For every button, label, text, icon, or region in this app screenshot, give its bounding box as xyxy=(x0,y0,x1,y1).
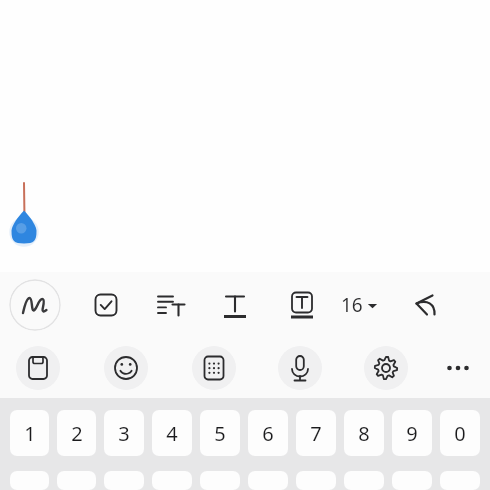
staticText: 4 xyxy=(166,420,178,447)
button[interactable]: 5 xyxy=(200,410,240,456)
button[interactable] xyxy=(200,471,240,490)
button[interactable]: Paragraph style xyxy=(148,282,194,328)
staticText: 16 xyxy=(341,292,363,318)
button[interactable]: 8 xyxy=(344,410,384,456)
button[interactable] xyxy=(104,471,144,490)
button[interactable]: Settings xyxy=(364,346,408,390)
button[interactable]: Emoji xyxy=(104,346,148,390)
button[interactable]: 6 xyxy=(248,410,288,456)
staticText: 8 xyxy=(358,420,370,447)
button[interactable]: Text format xyxy=(212,282,258,328)
button[interactable] xyxy=(248,471,288,490)
button[interactable]: Undo xyxy=(402,282,448,328)
staticText: 3 xyxy=(118,420,130,447)
staticText: 2 xyxy=(71,420,83,447)
button[interactable]: Handwriting xyxy=(9,279,61,331)
button[interactable]: 2 xyxy=(57,410,96,456)
button[interactable] xyxy=(392,471,432,490)
staticText: 9 xyxy=(406,420,418,447)
button[interactable] xyxy=(57,471,96,490)
button[interactable] xyxy=(344,471,384,490)
button[interactable] xyxy=(296,471,336,490)
button[interactable]: Clipboard xyxy=(16,346,60,390)
staticText: 0 xyxy=(454,420,466,447)
button[interactable]: 9 xyxy=(392,410,432,456)
staticText: 6 xyxy=(262,420,274,447)
button[interactable]: 1 xyxy=(10,410,49,456)
button[interactable]: More options xyxy=(436,346,480,390)
staticText: 1 xyxy=(24,420,36,447)
button[interactable]: 4 xyxy=(152,410,192,456)
button[interactable]: 0 xyxy=(440,410,480,456)
button[interactable]: 16 xyxy=(337,283,382,327)
button[interactable] xyxy=(440,471,480,490)
button[interactable]: Text background xyxy=(279,282,325,328)
staticText: 7 xyxy=(310,420,322,447)
button[interactable]: Voice input xyxy=(278,346,322,390)
button[interactable] xyxy=(152,471,192,490)
button[interactable]: Checklist xyxy=(83,282,129,328)
button[interactable] xyxy=(10,471,49,490)
button[interactable]: 7 xyxy=(296,410,336,456)
staticText: 5 xyxy=(214,420,226,447)
button[interactable]: Stickers xyxy=(192,346,236,390)
button[interactable]: 3 xyxy=(104,410,144,456)
